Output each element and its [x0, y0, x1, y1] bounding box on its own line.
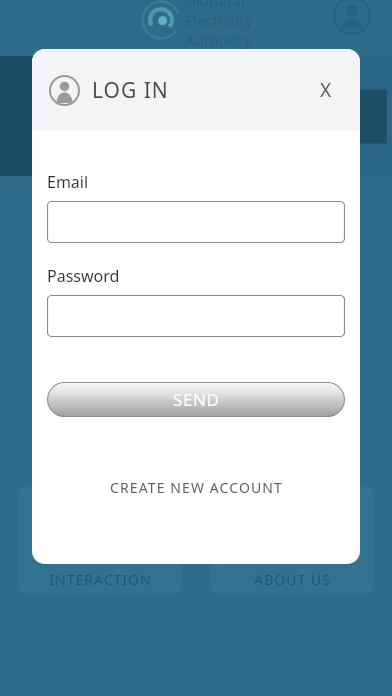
staticText: Authority: [185, 30, 251, 50]
button[interactable]: CREATE NEW ACCOUNT: [47, 472, 345, 502]
button[interactable]: INTERACTION: [18, 485, 182, 595]
button[interactable]: SEND: [47, 382, 345, 417]
staticText: ABOUT US: [254, 570, 331, 589]
button[interactable]: [47, 295, 345, 337]
staticText: Email: [47, 171, 89, 193]
button[interactable]: [47, 201, 345, 243]
button[interactable]: [352, 56, 392, 176]
button[interactable]: Account: [333, 0, 371, 35]
staticText: SEND: [173, 388, 220, 411]
staticText: Gibraltar: [185, 0, 248, 10]
staticText: CREATE NEW ACCOUNT: [110, 478, 283, 497]
button[interactable]: Close: [306, 70, 346, 110]
staticText: Password: [47, 265, 120, 287]
staticText: X: [320, 77, 332, 103]
staticText: INTERACTION: [49, 570, 152, 589]
staticText: LOG IN: [92, 76, 169, 105]
button[interactable]: ABOUT US: [210, 485, 374, 595]
staticText: Electricity: [185, 10, 253, 30]
button[interactable]: [0, 56, 50, 176]
